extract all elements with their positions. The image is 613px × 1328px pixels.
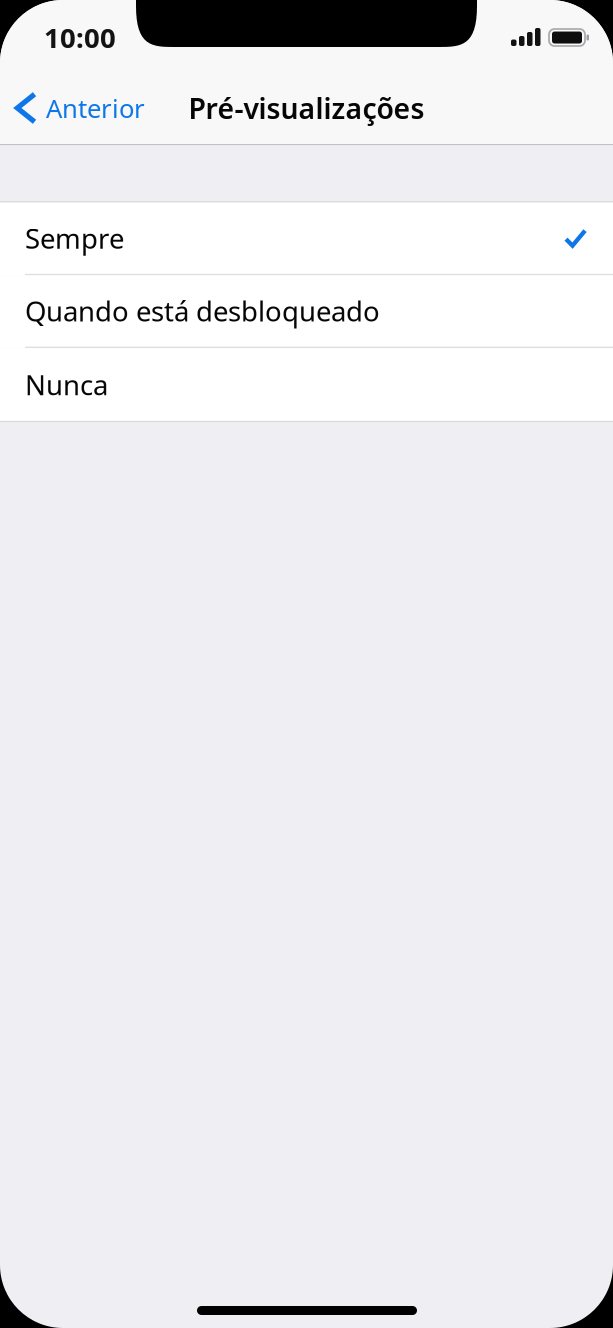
staticText: Anterior [46, 91, 145, 125]
button[interactable]: Nunca [0, 348, 613, 421]
staticText: Pré-visualizações [188, 89, 424, 127]
staticText: Nunca [25, 366, 108, 403]
staticText: 10:00 [44, 19, 116, 55]
button[interactable]: Anterior [0, 72, 159, 144]
staticText: Quando está desbloqueado [25, 293, 380, 329]
button[interactable]: Sempre [0, 202, 613, 275]
button[interactable]: Quando está desbloqueado [0, 275, 613, 348]
staticText: Sempre [25, 220, 124, 256]
